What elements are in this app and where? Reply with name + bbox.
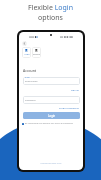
staticText: Register [33, 53, 41, 56]
button[interactable]: Login [22, 47, 31, 58]
staticText: Flexible Login [28, 3, 73, 13]
staticText: Forgot Password? [19, 106, 79, 109]
staticText: Enter Email [25, 80, 38, 83]
staticText: Continue with OTP [19, 161, 83, 164]
button[interactable]: Enter Email [23, 77, 80, 85]
button[interactable]: Register [32, 47, 41, 58]
staticText: Sign up [19, 89, 79, 92]
button[interactable]: Login [23, 112, 80, 119]
staticText: Account [23, 68, 37, 73]
button[interactable]: Back [22, 41, 27, 46]
staticText: options [38, 13, 63, 23]
staticText: Login [48, 114, 56, 118]
button[interactable]: By continuing you agree to our Terms & C… [22, 122, 83, 125]
staticText: Login [24, 53, 30, 56]
staticText: By continuing you agree to our Terms & C… [25, 122, 73, 125]
staticText: Password [25, 99, 36, 102]
button[interactable]: Password [23, 96, 80, 104]
staticText: Email [25, 76, 31, 79]
